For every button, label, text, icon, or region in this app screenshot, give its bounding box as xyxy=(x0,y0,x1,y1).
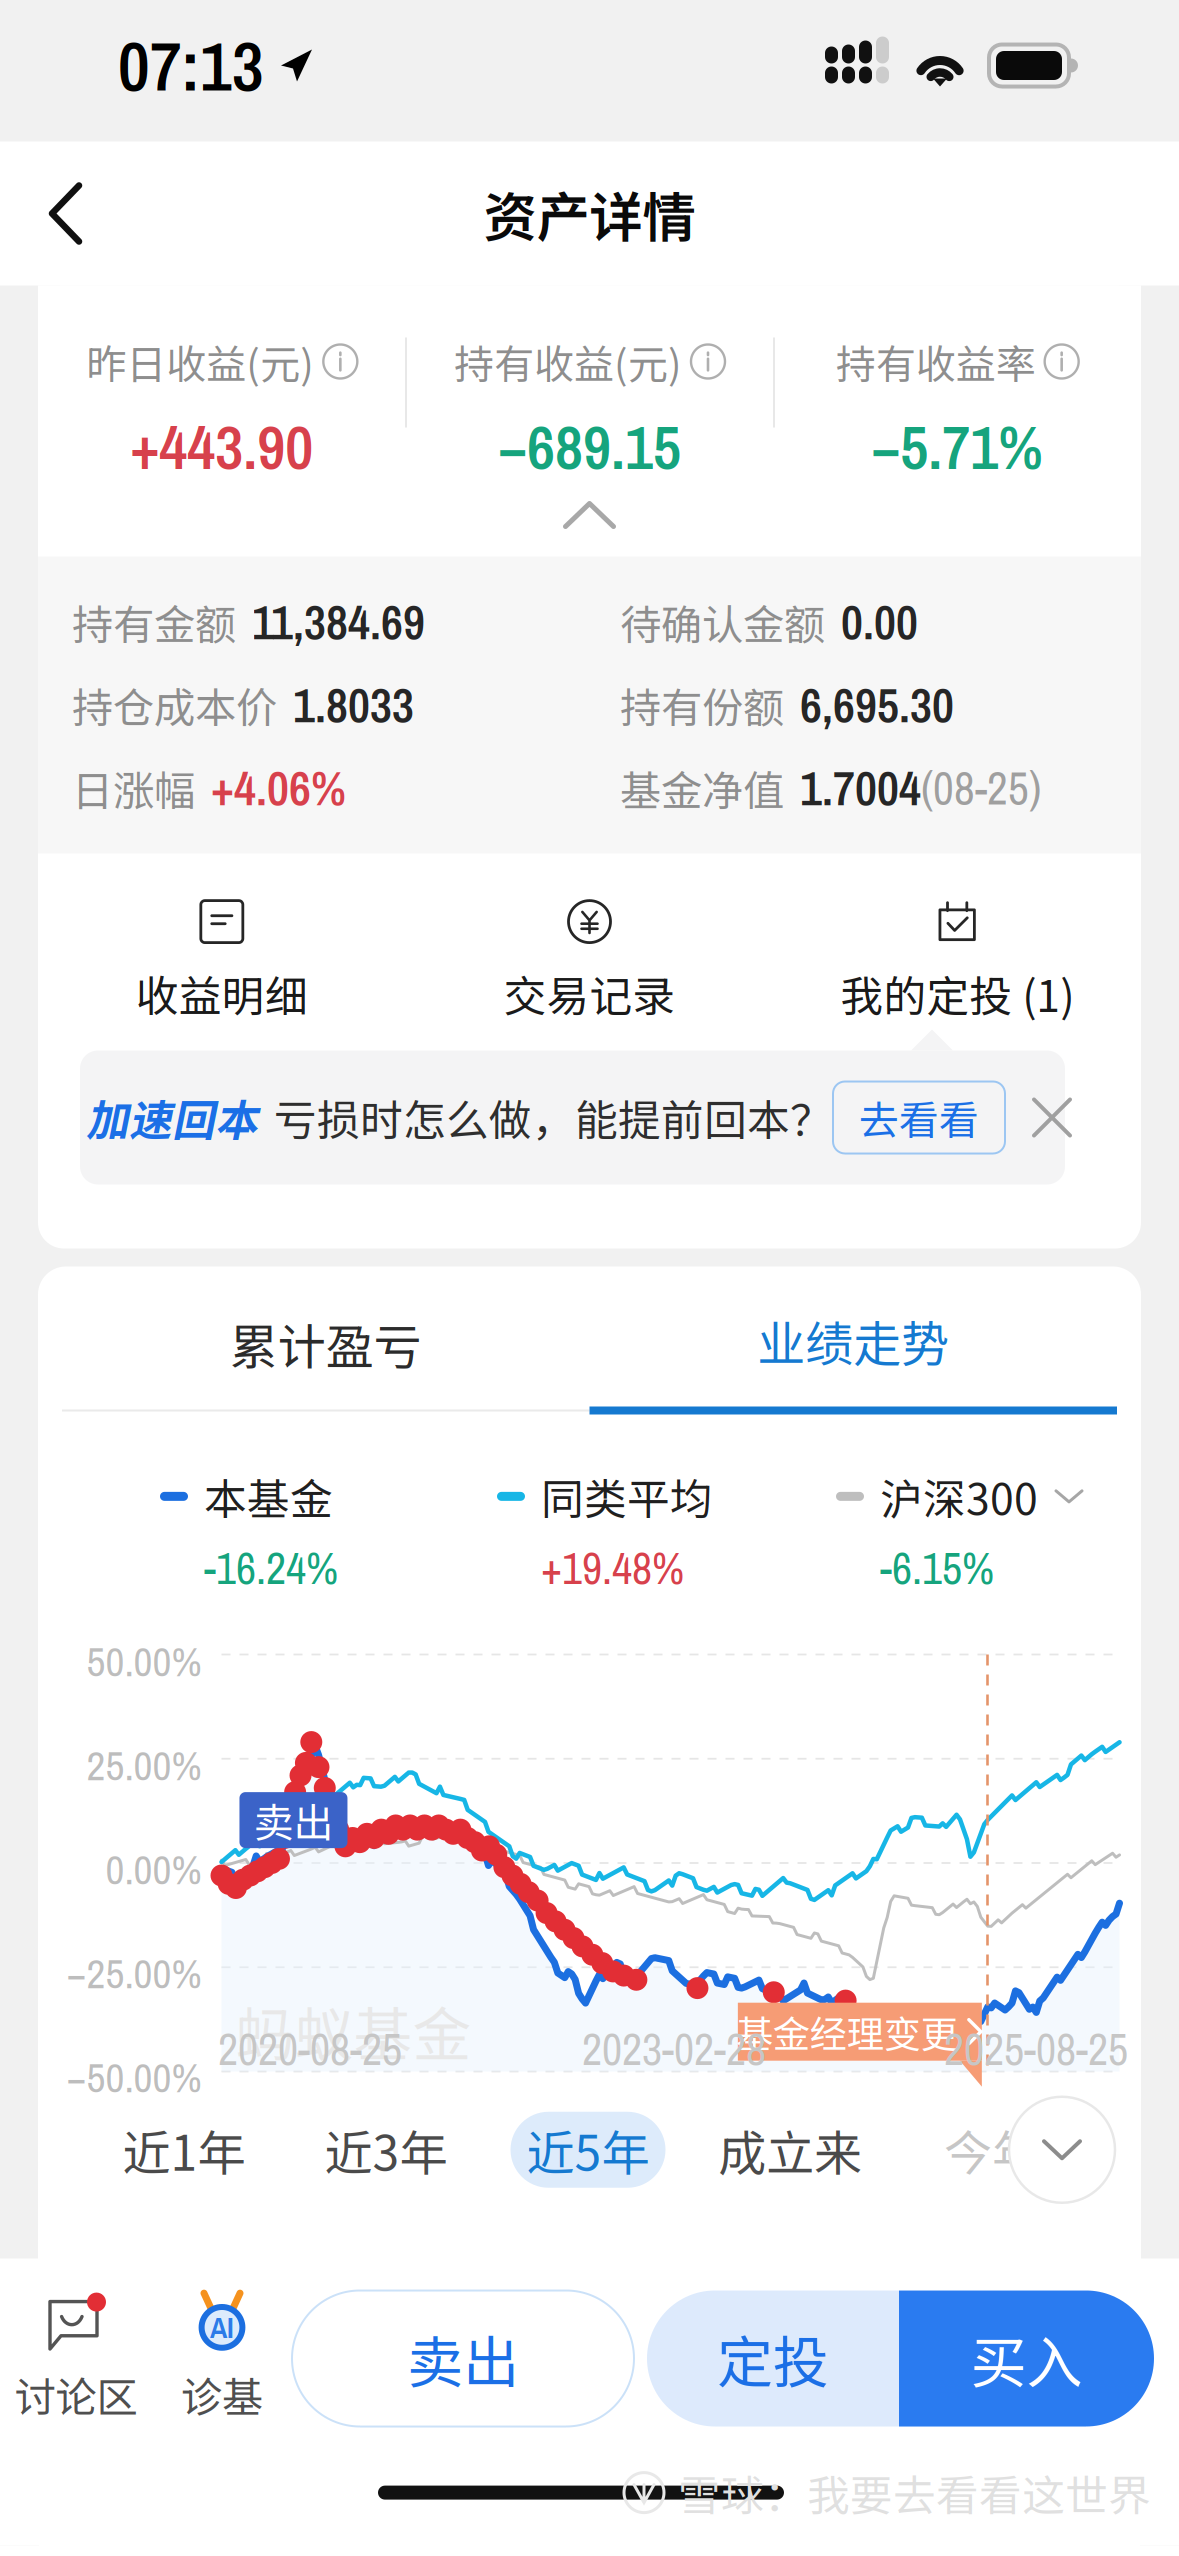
button[interactable]: 业绩走势 xyxy=(589,1274,1117,1414)
staticText: +19.48% xyxy=(541,1538,684,1598)
staticText: 本基金 xyxy=(204,1465,333,1527)
staticText: 25.00% xyxy=(86,1737,201,1793)
staticText: 成立来 xyxy=(718,2115,862,2184)
staticText: 07:13 xyxy=(118,19,264,112)
staticText: 加速回本 xyxy=(86,1087,258,1148)
staticText: 业绩走势 xyxy=(757,1306,949,1375)
staticText: 持有金额 xyxy=(72,592,236,652)
staticText: 蚂蚁基金 xyxy=(235,1988,471,2073)
staticText: 买入 xyxy=(970,2318,1082,2399)
button[interactable]: 交易记录 xyxy=(406,901,773,1024)
staticText: 日涨幅 xyxy=(72,758,195,818)
staticText: 今年 xyxy=(944,2115,1040,2184)
staticText: 交易记录 xyxy=(503,963,675,1024)
staticText: 沪深300 xyxy=(880,1465,1038,1527)
staticText: −50.00% xyxy=(66,2049,201,2105)
staticText: 1.8033 xyxy=(293,673,414,737)
button[interactable]: 卖出 xyxy=(292,2290,634,2426)
staticText: 基金净值 xyxy=(620,758,784,818)
button[interactable]: Close xyxy=(1005,1094,1079,1140)
button[interactable]: 买入 xyxy=(899,2290,1154,2426)
button[interactable]: 近3年 xyxy=(285,2111,487,2189)
staticText: 收益明细 xyxy=(136,963,308,1024)
staticText: 卖出 xyxy=(253,1791,333,1849)
staticText: 持有收益率 xyxy=(836,332,1036,390)
staticText: 近1年 xyxy=(122,2115,245,2184)
staticText: 定投 xyxy=(717,2318,829,2399)
button[interactable]: 累计盈亏 xyxy=(62,1277,589,1411)
staticText: 亏损时怎么做，能提前回本？ xyxy=(274,1087,833,1148)
button[interactable]: Back xyxy=(0,158,117,268)
staticText: 昨日收益(元) xyxy=(86,332,314,390)
staticText: AI xyxy=(210,2308,234,2347)
button[interactable]: 今年 xyxy=(891,2111,1093,2189)
staticText: 持有份额 xyxy=(620,675,784,735)
staticText: -16.24% xyxy=(204,1538,338,1598)
staticText: 累计盈亏 xyxy=(230,1309,422,1378)
staticText: 同类平均 xyxy=(541,1465,713,1527)
staticText: 近5年 xyxy=(526,2115,649,2184)
button[interactable]: 近1年 xyxy=(83,2111,285,2189)
staticText: 2020-08-25 xyxy=(218,2019,402,2079)
button[interactable]: 近5年 xyxy=(487,2111,689,2189)
staticText: +4.06% xyxy=(211,756,346,820)
staticText: 50.00% xyxy=(86,1633,201,1689)
staticText: 持有收益(元) xyxy=(454,332,682,390)
staticText: −5.71% xyxy=(871,405,1043,488)
staticText: 基金经理变更 xyxy=(736,2005,958,2059)
staticText: 资产详情 xyxy=(483,175,695,252)
button[interactable]: 我的定投 (1) xyxy=(773,901,1141,1024)
button[interactable]: AI xyxy=(152,2290,292,2426)
staticText: (08-25) xyxy=(921,757,1041,819)
button[interactable]: 成立来 xyxy=(689,2111,891,2189)
staticText: 1.7004 xyxy=(800,756,921,820)
button[interactable]: Collapse xyxy=(38,501,1141,556)
staticText: 我的定投 (1) xyxy=(840,963,1074,1024)
button[interactable]: 定投 xyxy=(647,2290,899,2426)
staticText: 雪球：我要去看看这世界 xyxy=(678,2462,1151,2523)
button[interactable]: 收益明细 xyxy=(38,901,406,1024)
staticText: -6.15% xyxy=(880,1538,994,1598)
staticText: 卖出 xyxy=(407,2318,519,2399)
staticText: −689.15 xyxy=(498,405,681,488)
staticText: 2023-02-28 xyxy=(582,2019,766,2079)
staticText: 去看看 xyxy=(859,1088,979,1146)
staticText: 持仓成本价 xyxy=(72,675,277,735)
staticText: −25.00% xyxy=(66,1945,201,2001)
staticText: +443.90 xyxy=(130,405,313,488)
staticText: 诊基 xyxy=(181,2365,263,2424)
staticText: 待确认金额 xyxy=(620,592,825,652)
staticText: 2025-08-25 xyxy=(944,2019,1128,2079)
button[interactable]: 去看看 xyxy=(833,1081,1005,1153)
staticText: 0.00 xyxy=(841,590,918,654)
staticText: 6,695.30 xyxy=(800,673,954,737)
staticText: 11,384.69 xyxy=(252,590,425,654)
staticText: 近3年 xyxy=(324,2115,447,2184)
button[interactable]: 讨论区 xyxy=(0,2290,152,2426)
staticText: 讨论区 xyxy=(14,2365,137,2424)
button[interactable]: More ranges xyxy=(1009,2097,1141,2203)
staticText: 0.00% xyxy=(105,1841,201,1897)
